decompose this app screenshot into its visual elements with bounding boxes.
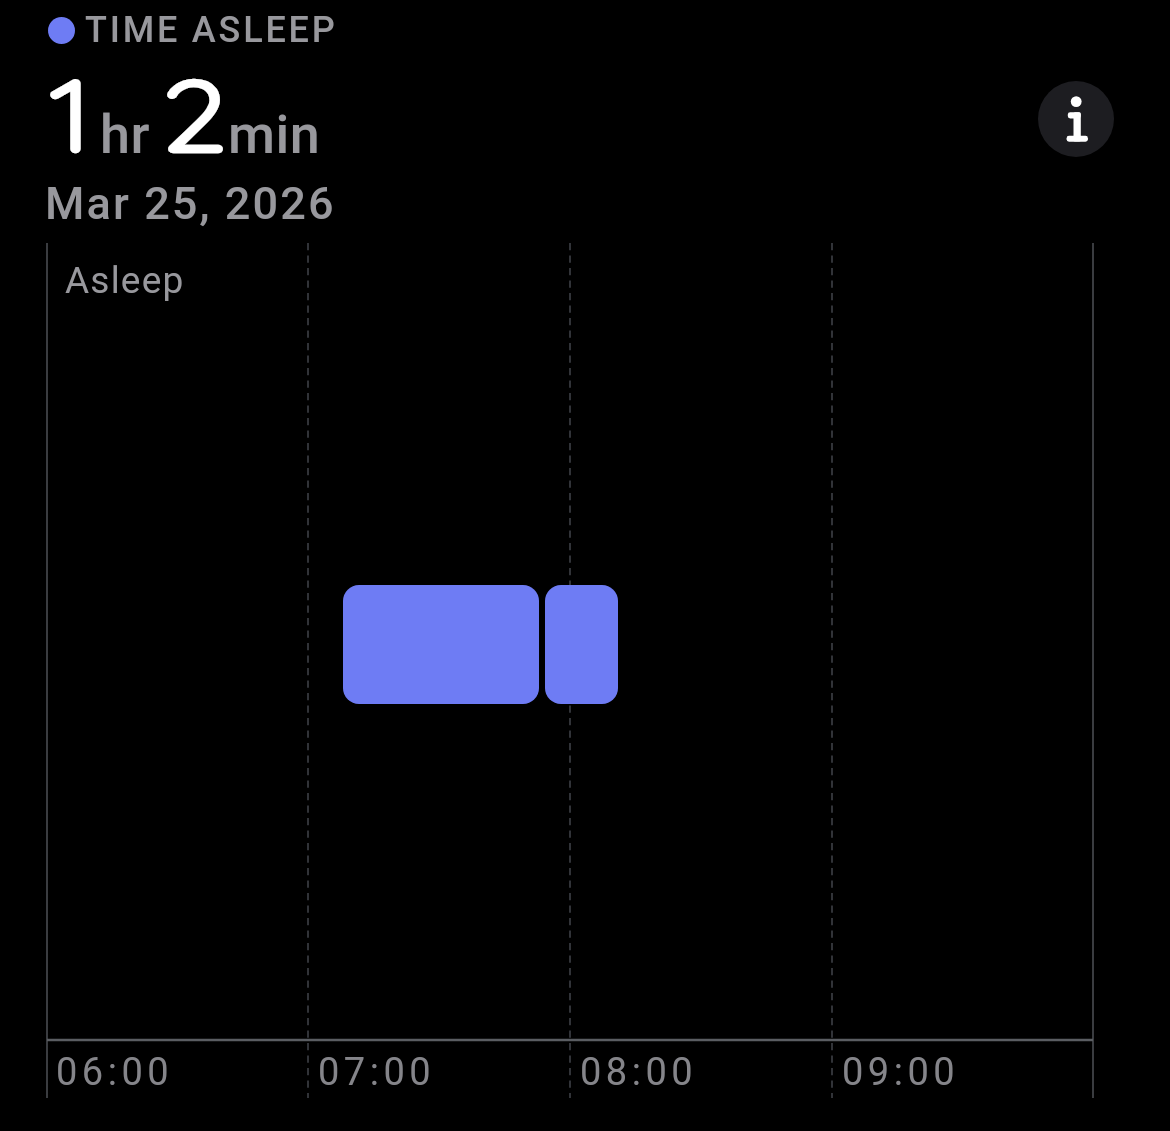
staticText: 1 xyxy=(50,53,92,176)
staticText: Mar 25, 2026 xyxy=(45,177,336,230)
staticText: TIME ASLEEP xyxy=(85,9,338,51)
staticText: hr xyxy=(100,103,150,166)
staticText: 06:00 xyxy=(56,1050,174,1095)
staticText: 09:00 xyxy=(842,1050,960,1095)
button[interactable]: Info xyxy=(1038,81,1114,157)
staticText: 2 xyxy=(163,53,226,176)
staticText: 2 xyxy=(163,53,226,176)
button[interactable]: Sleep chart, 1 hr 2 min asleep xyxy=(47,243,1093,1040)
staticText: min xyxy=(228,103,321,166)
staticText: Asleep xyxy=(65,259,185,302)
staticText: 1 xyxy=(50,53,92,176)
staticText: 08:00 xyxy=(580,1050,698,1095)
staticText: 07:00 xyxy=(318,1050,436,1095)
